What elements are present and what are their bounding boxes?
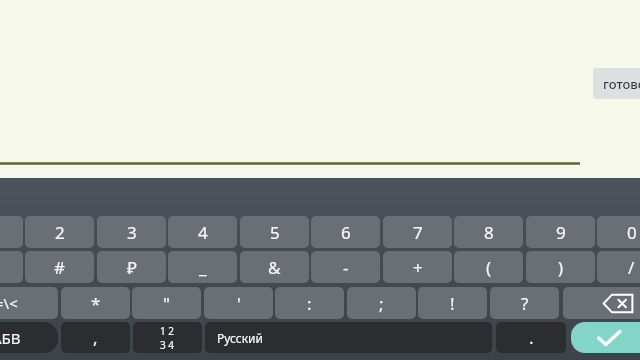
button[interactable]: &	[240, 251, 309, 283]
staticText: 1 2	[160, 324, 175, 338]
staticText: -	[343, 256, 349, 279]
button[interactable]: -	[311, 251, 380, 283]
button[interactable]: ?	[490, 287, 559, 319]
button[interactable]: 1 2	[133, 322, 202, 353]
staticText: (	[486, 256, 492, 279]
staticText: 5	[270, 221, 280, 244]
button[interactable]: '	[204, 287, 273, 319]
button[interactable]: .	[496, 322, 566, 353]
staticText: готово	[603, 75, 640, 93]
button[interactable]: #	[25, 251, 94, 283]
button[interactable]: 9	[526, 216, 595, 248]
staticText: 2	[55, 221, 65, 244]
staticText: 4	[198, 221, 208, 244]
button[interactable]: ;	[347, 287, 416, 319]
button[interactable]: *	[61, 287, 130, 319]
button[interactable]: АБВ	[0, 322, 58, 353]
button[interactable]: ₽	[97, 251, 166, 283]
button[interactable]: ,	[61, 322, 130, 353]
staticText: 6	[341, 221, 351, 244]
staticText: _	[199, 256, 207, 279]
button[interactable]: 1	[0, 216, 23, 248]
button[interactable]: /	[597, 251, 640, 283]
staticText: !	[450, 292, 455, 315]
button[interactable]: 2	[25, 216, 94, 248]
button[interactable]: 6	[311, 216, 380, 248]
staticText: *	[91, 292, 101, 315]
button[interactable]: 7	[383, 216, 452, 248]
staticText: Русский	[217, 330, 263, 346]
staticText: &	[268, 256, 281, 279]
button[interactable]: @	[0, 251, 23, 283]
button[interactable]: +	[383, 251, 452, 283]
staticText: "	[163, 292, 170, 315]
button[interactable]: 8	[454, 216, 523, 248]
staticText: 3 4	[160, 338, 175, 352]
staticText: )	[558, 256, 564, 279]
button[interactable]: 0	[597, 216, 640, 248]
button[interactable]: Backspace	[563, 287, 640, 319]
staticText: 3	[127, 221, 137, 244]
button[interactable]: 3	[97, 216, 166, 248]
button[interactable]: :	[275, 287, 344, 319]
staticText: ,	[93, 326, 98, 349]
button[interactable]: _	[168, 251, 237, 283]
staticText: /	[628, 256, 635, 279]
staticText: ;	[379, 292, 384, 315]
button[interactable]: Русский	[205, 322, 492, 353]
staticText: 0	[627, 221, 637, 244]
button[interactable]: готово	[593, 68, 640, 99]
staticText: АБВ	[0, 328, 21, 348]
staticText: 8	[484, 221, 494, 244]
staticText: 7	[413, 221, 423, 244]
button[interactable]: 5	[240, 216, 309, 248]
button[interactable]: )	[526, 251, 595, 283]
staticText: ₽	[127, 256, 137, 279]
staticText: =\<	[0, 293, 18, 313]
staticText: .	[529, 326, 534, 349]
staticText: :	[307, 292, 312, 315]
staticText: '	[237, 292, 241, 315]
button[interactable]: Enter	[571, 322, 640, 353]
button[interactable]: (	[454, 251, 523, 283]
staticText: +	[413, 256, 423, 279]
button[interactable]: =\<	[0, 287, 58, 319]
button[interactable]: 4	[168, 216, 237, 248]
button[interactable]: "	[132, 287, 201, 319]
staticText: ?	[521, 292, 529, 315]
staticText: #	[54, 256, 65, 279]
button[interactable]: !	[418, 287, 487, 319]
staticText: 9	[556, 221, 566, 244]
